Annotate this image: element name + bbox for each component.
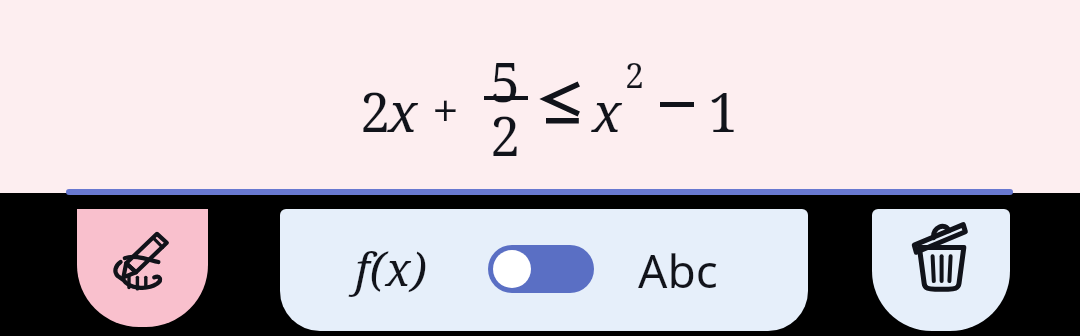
staticText: Abc	[638, 239, 718, 302]
staticText: 2	[490, 98, 521, 172]
staticText: 5	[490, 44, 521, 118]
staticText: 2	[625, 52, 645, 98]
staticText: x	[592, 74, 622, 148]
button[interactable]: Delete	[872, 209, 1010, 331]
button[interactable]: Handwriting input	[77, 209, 208, 327]
staticText: +	[432, 77, 459, 142]
staticText: 1	[708, 74, 739, 148]
button[interactable]: Toggle math and text input	[488, 245, 594, 293]
staticText: x	[388, 74, 418, 148]
staticText: 2	[360, 74, 391, 148]
staticText: f(x)	[355, 237, 427, 300]
